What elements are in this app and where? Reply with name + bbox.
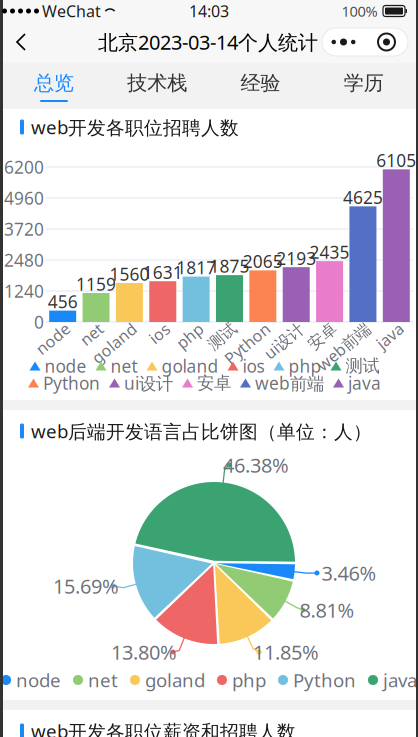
staticText: 3720 xyxy=(4,217,44,240)
staticText: 6105 xyxy=(376,149,416,172)
staticText: net xyxy=(110,354,137,377)
staticText: 1159 xyxy=(76,272,116,295)
staticText: web开发各职位招聘人数 xyxy=(31,115,239,139)
staticText: 1560 xyxy=(109,262,149,285)
button[interactable]: 技术栈 xyxy=(106,63,209,109)
staticText: 1240 xyxy=(4,279,44,302)
staticText: node xyxy=(16,668,61,692)
staticText: net xyxy=(85,339,110,360)
staticText: 14:03 xyxy=(189,0,229,22)
staticText: 2065 xyxy=(243,250,283,273)
staticText: WeChat xyxy=(42,0,101,22)
staticText: php xyxy=(232,668,266,692)
staticText: 4625 xyxy=(343,186,383,209)
staticText: ios xyxy=(242,354,264,377)
staticText: 安卓 xyxy=(311,340,343,360)
staticText: java xyxy=(383,668,417,692)
staticText: 经验 xyxy=(240,71,280,95)
staticText: php xyxy=(180,339,210,360)
button[interactable]: Back xyxy=(5,25,36,59)
staticText: 2435 xyxy=(310,241,350,264)
staticText: 技术栈 xyxy=(127,71,187,95)
staticText: 1875 xyxy=(209,255,249,278)
staticText: Python xyxy=(43,371,100,394)
staticText: 总览 xyxy=(34,71,74,95)
staticText: 学历 xyxy=(344,71,384,95)
staticText: 11.85% xyxy=(253,639,319,665)
button[interactable]: More options xyxy=(322,28,408,56)
staticText: 0 xyxy=(34,310,44,333)
staticText: goland xyxy=(161,354,218,377)
button[interactable]: 经验 xyxy=(209,63,313,109)
staticText: ui设计 xyxy=(264,339,310,360)
staticText: goland xyxy=(90,339,143,360)
staticText: goland xyxy=(145,668,205,692)
staticText: 测试 xyxy=(345,355,379,377)
staticText: 测试 xyxy=(211,340,243,360)
staticText: web前端 xyxy=(313,339,377,360)
staticText: php xyxy=(288,354,321,377)
staticText: web开发各职位薪资和招聘人数 xyxy=(31,719,296,737)
staticText: 1817 xyxy=(176,256,216,279)
staticText: ios xyxy=(154,339,176,360)
staticText: Python xyxy=(293,668,356,692)
staticText: node xyxy=(37,339,76,360)
staticText: ui设计 xyxy=(124,371,173,394)
staticText: 15.69% xyxy=(53,573,119,599)
staticText: 北京2023-03-14个人统计 xyxy=(98,29,318,55)
staticText: 4960 xyxy=(4,186,44,209)
staticText: 13.80% xyxy=(111,639,177,665)
staticText: net xyxy=(88,668,118,692)
staticText: java xyxy=(348,371,381,394)
staticText: 2193 xyxy=(276,247,316,270)
staticText: 100% xyxy=(341,1,377,21)
staticText: web前端 xyxy=(255,371,324,394)
staticText: 2480 xyxy=(4,248,44,271)
staticText: 安卓 xyxy=(197,372,231,394)
staticText: 6200 xyxy=(4,155,44,178)
staticText: 3.46% xyxy=(321,560,376,586)
staticText: 46.38% xyxy=(223,452,289,478)
staticText: 456 xyxy=(48,290,78,313)
staticText: web后端开发语言占比饼图（单位：人） xyxy=(31,419,372,443)
staticText: Python xyxy=(223,339,277,360)
staticText: node xyxy=(44,354,86,377)
staticText: java xyxy=(380,339,410,360)
button[interactable]: 总览 xyxy=(3,63,106,109)
staticText: 8.81% xyxy=(299,597,354,623)
button[interactable]: 学历 xyxy=(313,63,416,109)
staticText: 1631 xyxy=(143,261,183,284)
